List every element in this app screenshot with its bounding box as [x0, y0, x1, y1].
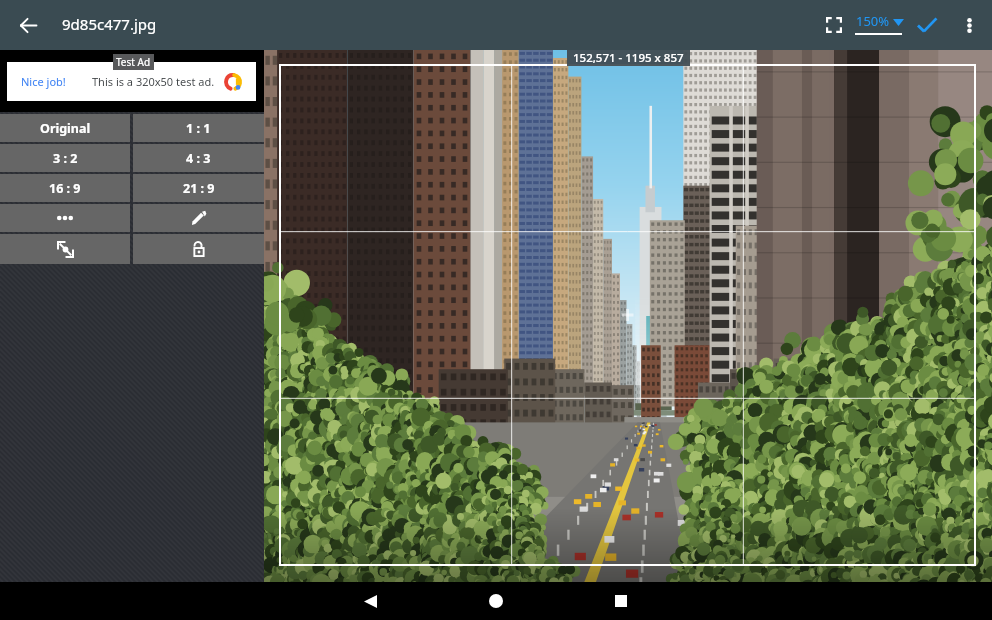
button[interactable]: Apply crop — [905, 3, 949, 47]
staticText: 9d85c477.jpg — [62, 14, 157, 34]
staticText: 3 : 2 — [53, 150, 78, 167]
staticText: 152,571 - 1195 x 857 — [573, 50, 684, 66]
button[interactable]: Free resize — [0, 234, 130, 264]
staticText: 16 : 9 — [49, 180, 81, 197]
button[interactable]: Lock aspect ratio — [133, 234, 264, 264]
button[interactable]: Nice job! — [7, 62, 256, 101]
button[interactable]: Back — [348, 582, 392, 620]
button[interactable]: 21 : 9 — [133, 174, 264, 202]
button[interactable]: More aspect ratios — [0, 204, 130, 232]
staticText: Nice job! — [21, 74, 66, 89]
button[interactable]: 3 : 2 — [0, 144, 130, 172]
staticText: Test Ad — [116, 55, 151, 69]
button[interactable]: 150% — [852, 10, 906, 44]
staticText: 21 : 9 — [183, 180, 215, 197]
button[interactable]: 16 : 9 — [0, 174, 130, 202]
button[interactable]: Original — [0, 114, 130, 142]
button[interactable]: Toggle fullscreen — [812, 3, 856, 47]
staticText: 1 : 1 — [186, 120, 211, 137]
staticText: 150% — [856, 12, 890, 30]
button[interactable]: Home — [474, 582, 518, 620]
button[interactable]: More options — [947, 3, 991, 47]
button[interactable]: 1 : 1 — [133, 114, 264, 142]
button[interactable]: Navigate up — [6, 3, 50, 47]
staticText: Original — [40, 120, 91, 137]
button[interactable]: Edit — [133, 204, 264, 232]
button[interactable]: 4 : 3 — [133, 144, 264, 172]
button[interactable]: Recent apps — [599, 582, 643, 620]
staticText: This is a 320x50 test ad. — [92, 74, 215, 89]
staticText: 4 : 3 — [186, 150, 211, 167]
